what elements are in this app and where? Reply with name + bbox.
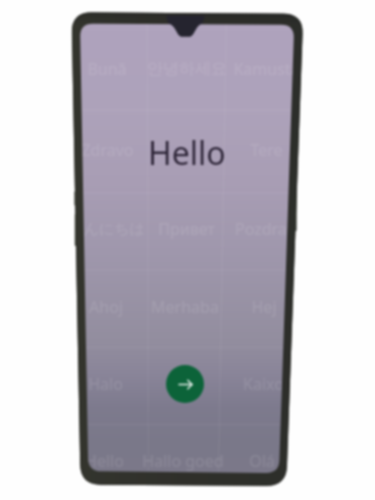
staticText: Olá bbox=[249, 450, 275, 472]
staticText: Hallo goed bbox=[142, 450, 224, 472]
staticText: Zdravo bbox=[81, 139, 134, 161]
staticText: Pozdrav bbox=[235, 218, 295, 240]
staticText: Halo bbox=[88, 373, 123, 395]
staticText: Hello bbox=[148, 131, 226, 175]
staticText: Hello bbox=[85, 450, 124, 472]
staticText: こんにちは bbox=[68, 220, 145, 239]
staticText: Kamusta bbox=[233, 58, 300, 80]
staticText: Kaixo bbox=[243, 373, 284, 395]
button[interactable]: Next bbox=[166, 365, 204, 403]
